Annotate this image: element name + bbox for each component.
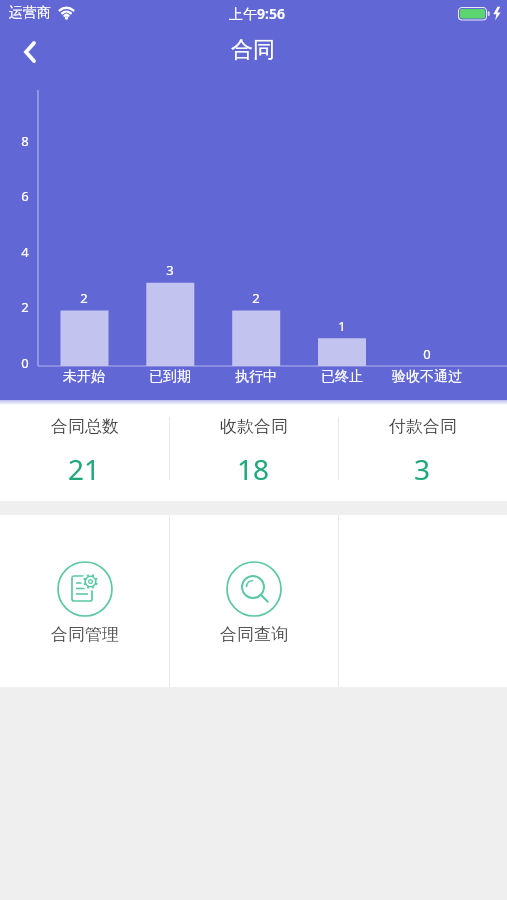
staticText: 合同: [231, 36, 275, 64]
staticText: 0: [21, 354, 29, 372]
staticText: 2: [80, 289, 88, 307]
staticText: 已到期: [149, 368, 191, 386]
staticText: 3: [166, 261, 174, 279]
staticText: 上午9:56: [229, 4, 285, 23]
staticText: 18: [237, 450, 270, 488]
button[interactable]: 付款合同: [338, 400, 507, 501]
staticText: 1: [338, 317, 346, 335]
staticText: 付款合同: [389, 416, 457, 437]
staticText: 8: [21, 132, 29, 150]
staticText: 4: [21, 243, 29, 261]
button[interactable]: 合同查询: [169, 515, 338, 687]
button[interactable]: [8, 34, 52, 70]
staticText: 2: [21, 298, 29, 316]
staticText: 3: [414, 450, 431, 488]
staticText: 6: [21, 187, 29, 205]
staticText: 合同查询: [220, 624, 288, 645]
staticText: 21: [68, 450, 101, 488]
button[interactable]: 合同管理: [0, 515, 169, 687]
staticText: 2: [252, 289, 260, 307]
staticText: 未开始: [63, 368, 105, 386]
button[interactable]: 收款合同: [169, 400, 338, 501]
button[interactable]: 合同总数: [0, 400, 169, 501]
staticText: 已终止: [321, 368, 363, 386]
staticText: 合同管理: [51, 624, 119, 645]
staticText: 运营商: [9, 4, 51, 22]
staticText: 合同总数: [51, 416, 119, 437]
staticText: 验收不通过: [392, 368, 462, 386]
staticText: 0: [423, 345, 431, 363]
staticText: 执行中: [235, 368, 277, 386]
staticText: 收款合同: [220, 416, 288, 437]
